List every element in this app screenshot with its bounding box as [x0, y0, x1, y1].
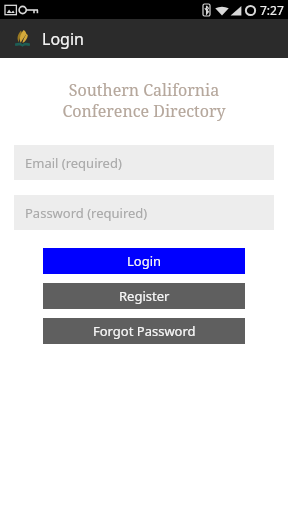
staticText: Login — [127, 252, 162, 270]
staticText: Password (required) — [25, 204, 148, 222]
button[interactable]: Forgot Password — [43, 318, 245, 344]
button[interactable]: Login — [43, 248, 245, 274]
staticText: Forgot Password — [93, 322, 196, 340]
staticText: 7:27 — [260, 2, 284, 18]
staticText: Register — [119, 287, 170, 305]
staticText: Southern California Conference Directory — [0, 79, 288, 122]
staticText: Login — [42, 28, 84, 50]
staticText: Email (required) — [25, 154, 122, 172]
button[interactable]: Register — [43, 283, 245, 309]
button[interactable]: Email (required) — [14, 145, 274, 180]
button[interactable]: Password (required) — [14, 195, 274, 230]
